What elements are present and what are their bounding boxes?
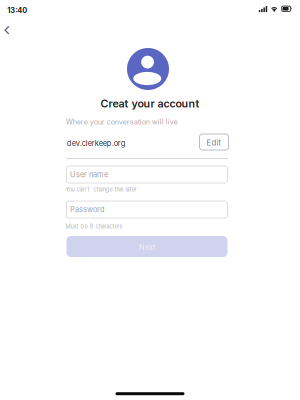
staticText: 13:40 xyxy=(7,6,27,15)
button[interactable]: Next xyxy=(66,236,227,257)
button[interactable]: Back xyxy=(0,19,22,41)
staticText: Next xyxy=(139,243,155,252)
staticText: User name xyxy=(70,170,108,179)
staticText: dev.clerkeep.org xyxy=(67,139,126,148)
staticText: Password xyxy=(70,205,105,214)
staticText: You can't change this later xyxy=(66,186,137,193)
button[interactable]: Edit xyxy=(199,134,228,150)
staticText: Where your conversation will live xyxy=(66,117,178,126)
staticText: Must be 8 characters xyxy=(66,223,123,230)
staticText: Creat your account xyxy=(100,97,199,110)
staticText: Edit xyxy=(206,138,221,147)
